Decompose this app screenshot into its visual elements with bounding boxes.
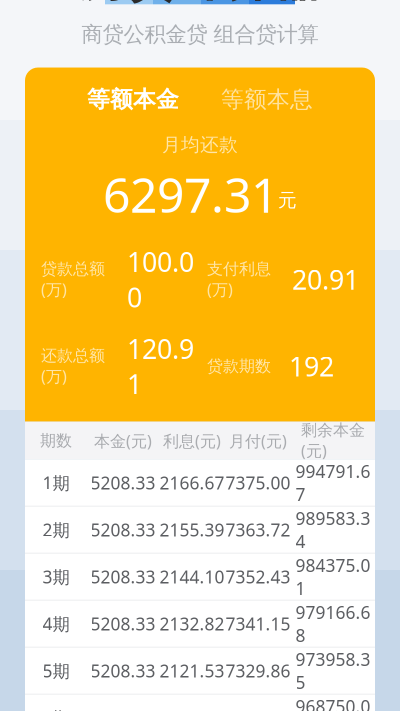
staticText: 支付利息(万) <box>207 259 271 300</box>
staticText: 20.91 <box>292 262 359 297</box>
staticText: 5208.33 <box>90 612 155 635</box>
staticText: 973958.35 <box>295 648 370 694</box>
staticText: 6297.31 <box>103 162 278 226</box>
staticText: 7329.86 <box>225 659 290 682</box>
staticText: 5208.33 <box>90 471 155 494</box>
staticText: 979166.68 <box>295 601 370 647</box>
staticText: 5208.33 <box>90 518 155 541</box>
staticText: 等额本息 <box>221 85 313 113</box>
staticText: 还款总额(万) <box>41 346 105 387</box>
button[interactable]: 等额本息 <box>215 81 319 117</box>
staticText: 利息(元) <box>163 430 221 451</box>
staticText: 元 <box>278 189 297 212</box>
staticText: 994791.67 <box>295 460 370 506</box>
staticText: 7363.72 <box>225 518 290 541</box>
staticText: 贷款总额(万) <box>41 259 105 300</box>
staticText: 2121.53 <box>159 659 224 682</box>
staticText: 120.91 <box>127 331 194 402</box>
staticText: 5208.33 <box>90 659 155 682</box>
staticText: 4期 <box>42 612 69 635</box>
staticText: 1期 <box>42 471 69 494</box>
staticText: 984375.01 <box>295 554 370 600</box>
staticText: 等额本金 <box>87 85 179 113</box>
staticText: 2132.82 <box>159 612 224 635</box>
staticText: 2166.67 <box>159 471 224 494</box>
staticText: 2期 <box>42 518 69 541</box>
staticText: 7375.00 <box>225 471 290 494</box>
staticText: 剩余本金(元) <box>301 420 365 461</box>
staticText: 期数 <box>40 431 72 451</box>
staticText: 3期 <box>42 565 69 588</box>
staticText: 贷款期数 <box>207 356 271 376</box>
staticText: 商贷公积金贷 组合贷计算 <box>81 21 318 47</box>
staticText: 7341.15 <box>225 612 290 635</box>
staticText: 月付(元) <box>229 430 287 451</box>
staticText: 989583.34 <box>295 507 370 553</box>
staticText: 5期 <box>42 659 69 682</box>
staticText: 本金(元) <box>94 430 152 451</box>
staticText: 2144.10 <box>159 565 224 588</box>
staticText: 192 <box>289 349 334 384</box>
staticText: 5208.33 <box>90 565 155 588</box>
staticText: 6期 <box>42 706 69 711</box>
staticText: 968750.02 <box>295 695 370 711</box>
staticText: 100.00 <box>127 244 194 315</box>
staticText: 7352.43 <box>225 565 290 588</box>
staticText: 月均还款 <box>162 133 238 156</box>
button[interactable]: 等额本金 <box>81 81 185 117</box>
staticText: 2155.39 <box>159 518 224 541</box>
staticText: 房贷计算器 <box>77 0 322 9</box>
